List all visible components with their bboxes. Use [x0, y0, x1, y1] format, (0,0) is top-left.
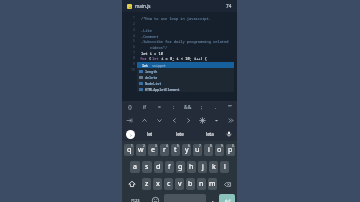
staticText: 7	[133, 51, 135, 55]
staticText: u	[195, 145, 200, 155]
button[interactable]: NodeList	[137, 80, 234, 86]
staticText: leta	[206, 131, 214, 137]
button[interactable]: s	[142, 161, 152, 173]
staticText: z	[145, 179, 149, 189]
button[interactable]: f	[165, 161, 174, 173]
button[interactable]: g	[176, 161, 185, 173]
staticText: 5	[177, 144, 179, 148]
button[interactable]: length	[137, 68, 234, 74]
staticText: k	[212, 162, 216, 172]
staticText: b	[188, 179, 193, 189]
button[interactable]: x	[153, 178, 162, 190]
button[interactable]: l	[220, 161, 229, 173]
button[interactable]: delete	[137, 74, 234, 80]
staticText: h	[189, 162, 194, 172]
button[interactable]: let	[137, 62, 234, 68]
button[interactable]: Down	[152, 114, 167, 127]
staticText: 6	[133, 45, 135, 49]
button[interactable]: Left	[167, 114, 181, 127]
staticText: a	[133, 162, 137, 172]
staticText: 3	[155, 144, 157, 148]
staticText: 3	[133, 28, 135, 32]
staticText: i	[208, 145, 210, 155]
staticText: “”	[228, 104, 232, 111]
button[interactable]: if	[137, 101, 152, 114]
button[interactable]: k	[209, 161, 218, 173]
button[interactable]: ?123	[123, 194, 147, 202]
button[interactable]: ;	[195, 101, 209, 114]
button[interactable]: n	[197, 178, 206, 190]
button[interactable]: j	[198, 161, 207, 173]
button[interactable]: More	[209, 114, 223, 127]
staticText: delete	[145, 75, 158, 80]
staticText: r	[163, 145, 166, 155]
button[interactable]: Right	[181, 114, 195, 127]
staticText: 9	[133, 62, 135, 66]
button[interactable]: Select	[195, 114, 209, 127]
button[interactable]: Voice input	[225, 130, 233, 138]
staticText: (	[149, 56, 152, 61]
button[interactable]: Shift	[124, 178, 140, 190]
button[interactable]: .	[209, 101, 223, 114]
staticText: .	[212, 196, 214, 202]
button[interactable]: JS	[127, 0, 232, 12]
staticText: 7	[199, 144, 201, 148]
button[interactable]: Tab	[122, 114, 137, 127]
staticText: d	[156, 162, 161, 172]
staticText: i = 0; i < 10; i++) {	[159, 56, 208, 61]
staticText: for	[140, 56, 149, 61]
staticText: -Like	[141, 28, 152, 33]
button[interactable]: :	[167, 101, 181, 114]
button[interactable]: e	[148, 144, 158, 156]
staticText: j	[202, 162, 204, 172]
staticText: 5	[133, 39, 135, 43]
staticText: p	[228, 145, 233, 155]
button[interactable]: “”	[223, 101, 237, 114]
staticText: 10	[131, 68, 135, 72]
button[interactable]: Show more suggestions	[126, 130, 135, 139]
staticText: o	[217, 145, 222, 155]
button[interactable]: v	[175, 178, 184, 190]
button[interactable]: z	[142, 178, 151, 190]
button[interactable]: i	[204, 144, 213, 156]
button[interactable]: {}	[122, 101, 137, 114]
button[interactable]: o	[215, 144, 224, 156]
staticText: 9	[221, 144, 223, 148]
button[interactable]: Backspace	[219, 178, 235, 190]
button[interactable]: a	[130, 161, 140, 173]
button[interactable]: .	[207, 194, 218, 202]
staticText: videos*/	[141, 45, 168, 50]
staticText: -Comment	[141, 34, 159, 39]
button[interactable]: b	[186, 178, 195, 190]
staticText: if	[143, 104, 147, 111]
button[interactable]: r	[160, 144, 169, 156]
button[interactable]: c	[164, 178, 173, 190]
button[interactable]: p	[226, 144, 235, 156]
staticText: let	[147, 131, 153, 137]
button[interactable]: Enter	[219, 194, 235, 202]
button[interactable]: u	[193, 144, 202, 156]
button[interactable]: w	[136, 144, 146, 156]
staticText: ›	[130, 131, 132, 139]
button[interactable]: t	[171, 144, 180, 156]
button[interactable]: Forward	[223, 114, 237, 127]
staticText: 2	[143, 144, 145, 148]
staticText: v	[178, 179, 182, 189]
staticText: length	[145, 69, 158, 74]
staticText: l	[224, 162, 226, 172]
button[interactable]: m	[208, 178, 217, 190]
button[interactable]: y	[182, 144, 191, 156]
button[interactable]: q	[124, 144, 134, 156]
button[interactable]: d	[154, 161, 163, 173]
button[interactable]: =	[152, 101, 167, 114]
button[interactable]: Up	[137, 114, 152, 127]
button[interactable]: Emoji	[147, 194, 163, 202]
staticText: let i = 10	[141, 51, 163, 56]
staticText: 0	[232, 144, 234, 148]
button[interactable]: HTMLAppletElement	[137, 86, 234, 92]
staticText: m	[209, 179, 216, 189]
button[interactable]: h	[187, 161, 196, 173]
staticText: lete	[176, 131, 184, 137]
button[interactable]: &&	[181, 101, 195, 114]
